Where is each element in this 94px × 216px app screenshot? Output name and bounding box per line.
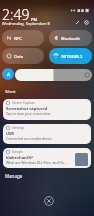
- staticText: Bluetooth: [61, 36, 80, 41]
- staticText: 2:49: [2, 5, 30, 24]
- button[interactable]: Auto brightness: [2, 68, 14, 80]
- staticText: Data: [14, 54, 24, 59]
- button[interactable]: Brightness: [15, 69, 92, 81]
- staticText: NFC: [14, 36, 22, 41]
- button[interactable]: Screen Capture: [3, 99, 91, 120]
- staticText: Connected as a media device: [6, 136, 53, 141]
- staticText: Manage: [5, 173, 23, 179]
- button[interactable]: NFC: [2, 30, 44, 46]
- button[interactable]: Edit tiles: [73, 18, 81, 26]
- staticText: blakechanOi?: [6, 155, 33, 160]
- staticText: PM: [31, 17, 38, 22]
- staticText: What are Windows DLL Files, and Ho...: [6, 160, 67, 165]
- staticText: Screenshot captured: [6, 106, 48, 111]
- button[interactable]: NETGEAR-2: [49, 48, 92, 64]
- staticText: Settings: [12, 126, 25, 130]
- staticText: Tap to view your screenshot: [6, 111, 51, 116]
- button[interactable]: Bluetooth: [49, 30, 92, 46]
- button[interactable]: Google: [3, 148, 91, 168]
- staticText: Wednesday, September 8: [2, 21, 50, 26]
- button[interactable]: Settings: [3, 124, 91, 144]
- staticText: NETGEAR-2: [61, 54, 83, 59]
- staticText: Silent: [5, 89, 16, 94]
- button[interactable]: Data: [2, 48, 44, 64]
- button[interactable]: Close all notifications: [44, 196, 54, 206]
- button[interactable]: Manage: [5, 173, 23, 179]
- button[interactable]: Settings: [82, 18, 90, 26]
- staticText: Screen Capture: [12, 101, 35, 105]
- staticText: USB: [6, 131, 14, 136]
- staticText: Google: [12, 150, 23, 154]
